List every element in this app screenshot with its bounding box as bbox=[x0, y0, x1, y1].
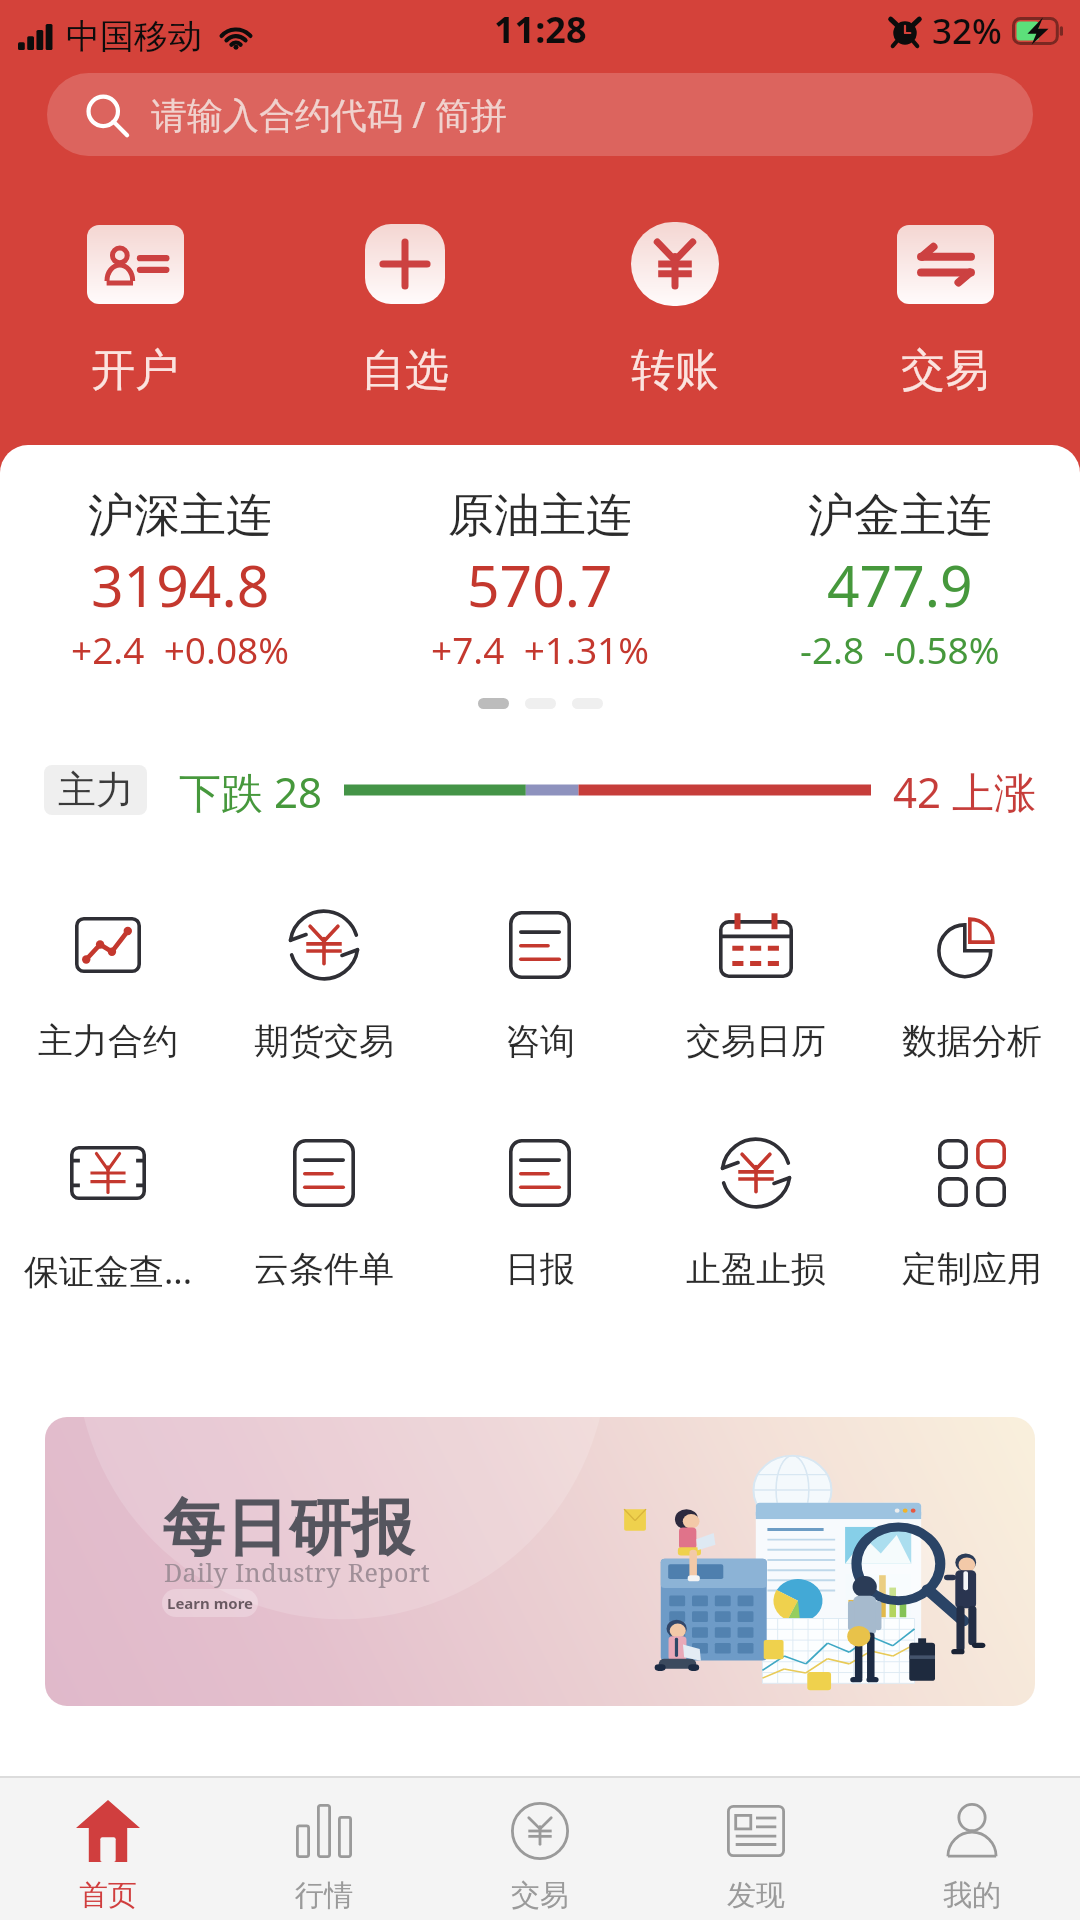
staticText: 交易 bbox=[901, 343, 989, 398]
staticText: 首页 bbox=[79, 1877, 137, 1914]
staticText: Daily Industry Report bbox=[164, 1555, 431, 1589]
staticText: 自选 bbox=[361, 343, 449, 398]
button[interactable]: 主力 bbox=[44, 765, 147, 815]
button[interactable]: 发现 bbox=[648, 1778, 864, 1920]
staticText: 32% bbox=[932, 7, 1002, 55]
button[interactable]: 沪金主连 bbox=[720, 487, 1080, 674]
staticText: +7.4 +1.31% bbox=[431, 624, 649, 674]
other: 交易 bbox=[897, 225, 994, 304]
button[interactable]: 沪深主连 bbox=[0, 487, 360, 674]
staticText: 转账 bbox=[631, 343, 719, 398]
staticText: 中国移动 bbox=[66, 15, 202, 58]
staticText: 止盈止损 bbox=[648, 1247, 864, 1291]
staticText: -2.8 -0.58% bbox=[800, 624, 1000, 674]
staticText: 570.7 bbox=[467, 546, 613, 624]
staticText: 保证金查... bbox=[0, 1247, 216, 1295]
staticText: 行情 bbox=[295, 1877, 353, 1914]
other: 开户 bbox=[87, 225, 184, 304]
staticText: 沪深主连 bbox=[88, 487, 272, 545]
staticText: 主力合约 bbox=[0, 1019, 216, 1063]
button[interactable]: 原油主连 bbox=[360, 487, 720, 674]
staticText: 交易日历 bbox=[648, 1019, 864, 1063]
button[interactable]: 云条件单 bbox=[216, 1135, 432, 1291]
staticText: 主力 bbox=[58, 766, 134, 814]
button[interactable]: 交易 bbox=[432, 1778, 648, 1920]
button[interactable]: 行情 bbox=[216, 1778, 432, 1920]
button[interactable]: 保证金查... bbox=[0, 1135, 216, 1295]
staticText: 交易 bbox=[511, 1877, 569, 1914]
button[interactable]: 交易 bbox=[810, 222, 1080, 398]
button[interactable]: 每日研报 bbox=[45, 1417, 1035, 1706]
button[interactable]: 主力合约 bbox=[0, 907, 216, 1063]
button[interactable]: Learn more bbox=[162, 1589, 258, 1617]
staticText: 42 上涨 bbox=[893, 763, 1036, 817]
button[interactable]: 交易日历 bbox=[648, 907, 864, 1063]
staticText: Learn more bbox=[167, 1593, 254, 1613]
button[interactable]: 日报 bbox=[432, 1135, 648, 1291]
staticText: 我的 bbox=[943, 1877, 1001, 1914]
staticText: 定制应用 bbox=[864, 1247, 1080, 1291]
button[interactable]: 首页 bbox=[0, 1778, 216, 1920]
button[interactable]: 我的 bbox=[864, 1778, 1080, 1920]
other: 自选 bbox=[365, 224, 445, 304]
staticText: +2.4 +0.08% bbox=[71, 624, 289, 674]
staticText: 下跌 28 bbox=[179, 763, 322, 817]
staticText: 请输入合约代码 / 简拼 bbox=[151, 90, 508, 139]
staticText: 每日研报 bbox=[162, 1489, 414, 1567]
button[interactable]: 数据分析 bbox=[864, 907, 1080, 1063]
staticText: 开户 bbox=[91, 343, 179, 398]
staticText: 发现 bbox=[727, 1877, 785, 1914]
staticText: 3194.8 bbox=[91, 546, 270, 624]
staticText: 数据分析 bbox=[864, 1019, 1080, 1063]
button[interactable]: 止盈止损 bbox=[648, 1135, 864, 1291]
staticText: 原油主连 bbox=[448, 487, 632, 545]
staticText: 期货交易 bbox=[216, 1019, 432, 1063]
button[interactable]: 咨询 bbox=[432, 907, 648, 1063]
button[interactable]: 开户 bbox=[0, 222, 270, 398]
staticText: 11:28 bbox=[494, 5, 587, 54]
button[interactable]: 定制应用 bbox=[864, 1135, 1080, 1291]
other: 转账 bbox=[631, 222, 719, 306]
button[interactable]: 自选 bbox=[270, 222, 540, 398]
staticText: 云条件单 bbox=[216, 1247, 432, 1291]
staticText: 日报 bbox=[432, 1247, 648, 1291]
staticText: 沪金主连 bbox=[808, 487, 992, 545]
staticText: 咨询 bbox=[432, 1019, 648, 1063]
button[interactable]: 转账 bbox=[540, 222, 810, 398]
staticText: 477.9 bbox=[827, 546, 973, 624]
button[interactable]: 请输入合约代码 / 简拼 bbox=[47, 73, 1033, 156]
button[interactable]: 期货交易 bbox=[216, 907, 432, 1063]
